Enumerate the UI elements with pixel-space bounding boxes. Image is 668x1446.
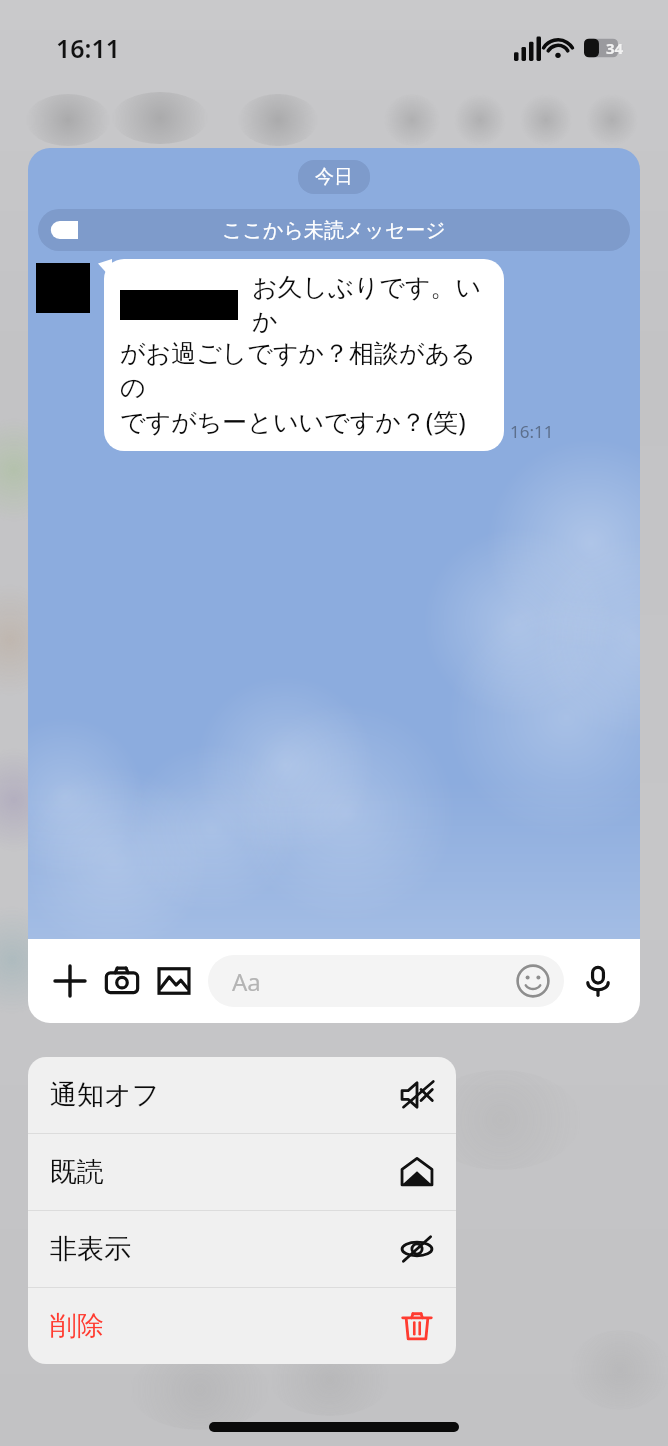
button[interactable]: 非表示 [28,1211,456,1287]
staticText: 16:11 [56,31,121,65]
button[interactable]: Add attachment [44,955,96,1007]
staticText: 今日 [315,165,353,189]
button[interactable]: 通知オフ [28,1057,456,1133]
button[interactable]: Photos [148,955,200,1007]
button[interactable]: Aa [208,955,564,1007]
staticText: 34 [606,38,624,58]
staticText: 既読 [50,1155,104,1189]
staticText: がお過ごしですか？相談があるの [120,338,488,404]
staticText: ですがちーといいですか？(笑) [120,404,466,438]
staticText: 削除 [50,1309,104,1343]
button[interactable]: 今日 [298,160,370,194]
button[interactable]: 既読 [28,1134,456,1210]
staticText: 非表示 [50,1232,131,1266]
button[interactable]: Emoji [516,964,550,998]
staticText: お久しぶりです。いか [252,272,488,338]
button[interactable]: 削除 [28,1288,456,1364]
staticText: ここから未読メッセージ [222,218,446,243]
staticText: 通知オフ [50,1078,160,1112]
staticText: Aa [232,965,261,998]
staticText: 16:11 [510,420,554,443]
button[interactable]: Camera [96,955,148,1007]
button[interactable]: お久しぶりです。いか [104,259,504,451]
button[interactable]: Voice message [572,955,624,1007]
button[interactable]: ここから未読メッセージ [38,209,630,251]
